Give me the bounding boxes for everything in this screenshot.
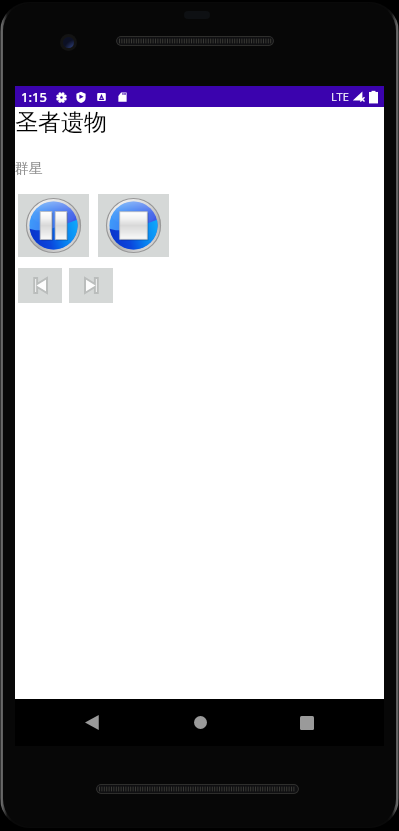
- staticText: 1:15: [21, 88, 47, 106]
- button[interactable]: Stop: [98, 194, 169, 257]
- button[interactable]: Previous: [18, 268, 62, 303]
- button[interactable]: Back: [68, 699, 116, 746]
- staticText: 群星: [15, 160, 43, 178]
- button[interactable]: Next: [69, 268, 113, 303]
- staticText: LTE: [331, 89, 349, 104]
- button[interactable]: Pause: [18, 194, 89, 257]
- staticText: 圣者遗物: [15, 108, 107, 134]
- button[interactable]: Recent apps: [283, 699, 331, 746]
- button[interactable]: Home: [176, 699, 224, 746]
